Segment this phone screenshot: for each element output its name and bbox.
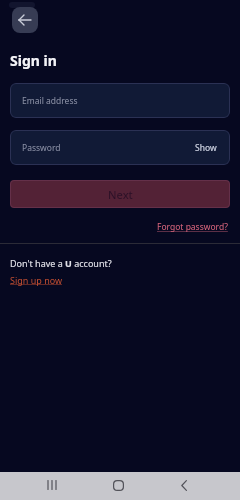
staticText: Show: [195, 142, 217, 154]
button[interactable]: [98, 471, 138, 499]
button[interactable]: Email address: [10, 83, 230, 118]
staticText: Forgot password?: [157, 221, 228, 233]
button[interactable]: Sign up now: [10, 274, 63, 286]
staticText: Don't have a U account?: [10, 257, 112, 269]
button[interactable]: Next: [10, 180, 230, 208]
button[interactable]: Show: [195, 130, 230, 165]
staticText: Password: [22, 142, 61, 154]
button[interactable]: [32, 471, 72, 499]
staticText: Email address: [22, 95, 78, 107]
button[interactable]: Password: [10, 130, 230, 165]
button[interactable]: [164, 471, 204, 499]
button[interactable]: [12, 7, 38, 33]
staticText: Sign in: [10, 51, 57, 70]
staticText: Next: [108, 187, 133, 202]
button[interactable]: Forgot password?: [157, 221, 240, 233]
staticText: Sign up now: [10, 274, 63, 286]
